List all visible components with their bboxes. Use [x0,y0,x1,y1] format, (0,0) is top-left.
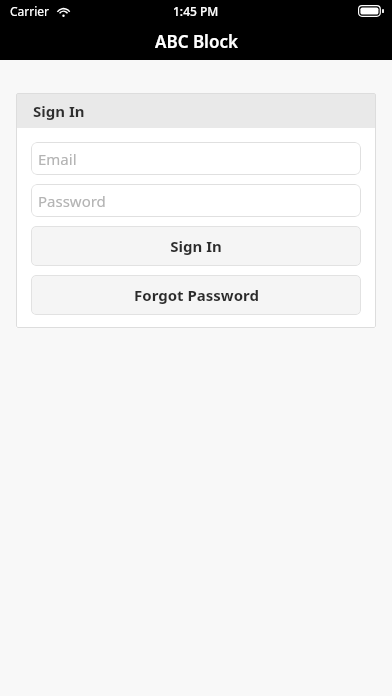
staticText: Password [38,191,106,211]
button[interactable]: Sign In [31,226,361,266]
staticText: ABC Block [155,30,238,53]
staticText: Forgot Password [134,285,259,305]
staticText: Sign In [33,101,85,121]
staticText: 1:45 PM [173,3,219,19]
button[interactable]: Password [31,184,361,217]
staticText: Carrier [10,3,50,19]
staticText: Email [38,149,77,169]
staticText: Sign In [170,236,222,256]
button[interactable]: Email [31,142,361,175]
button[interactable]: Forgot Password [31,275,361,315]
